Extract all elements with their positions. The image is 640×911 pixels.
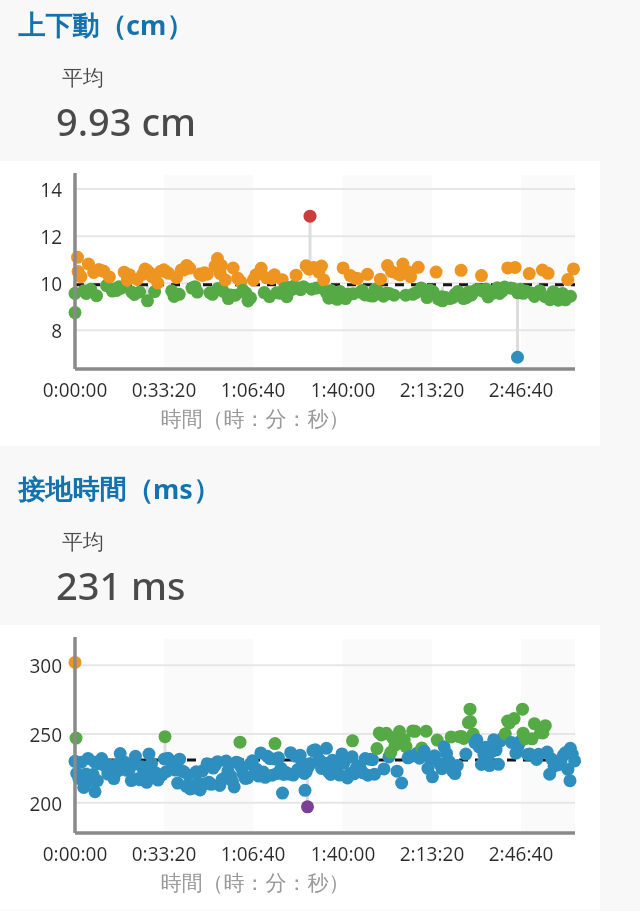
staticText: 0:00:00	[30, 377, 120, 403]
staticText: 0:33:20	[119, 841, 209, 867]
staticText: 時間（時：分：秒）	[0, 870, 510, 896]
staticText: 接地時間（ms）	[18, 470, 220, 507]
staticText: 2:13:20	[387, 841, 477, 867]
staticText: 2:13:20	[387, 377, 477, 403]
staticText: 平均	[62, 529, 104, 555]
staticText: 14	[0, 177, 62, 203]
button[interactable]: 接地時間（ms） chart	[0, 625, 600, 910]
staticText: 1:06:40	[208, 841, 298, 867]
staticText: 時間（時：分：秒）	[0, 406, 510, 432]
staticText: 12	[0, 224, 62, 250]
staticText: 0:33:20	[119, 377, 209, 403]
button[interactable]: 上下動（cm）	[0, 0, 640, 43]
staticText: 250	[0, 722, 62, 748]
staticText: 2:46:40	[476, 841, 566, 867]
staticText: 8	[0, 318, 62, 344]
button[interactable]: 接地時間（ms）	[0, 464, 640, 507]
staticText: 上下動（cm）	[18, 6, 194, 43]
staticText: 2:46:40	[476, 377, 566, 403]
staticText: 0:00:00	[30, 841, 120, 867]
staticText: 231 ms	[56, 559, 186, 611]
staticText: 9.93 cm	[56, 95, 197, 147]
staticText: 300	[0, 653, 62, 679]
staticText: 平均	[62, 65, 104, 91]
staticText: 10	[0, 271, 62, 297]
staticText: 1:06:40	[208, 377, 298, 403]
staticText: 1:40:00	[298, 377, 388, 403]
staticText: 1:40:00	[298, 841, 388, 867]
button[interactable]: 上下動（cm） chart	[0, 161, 600, 446]
staticText: 200	[0, 791, 62, 817]
